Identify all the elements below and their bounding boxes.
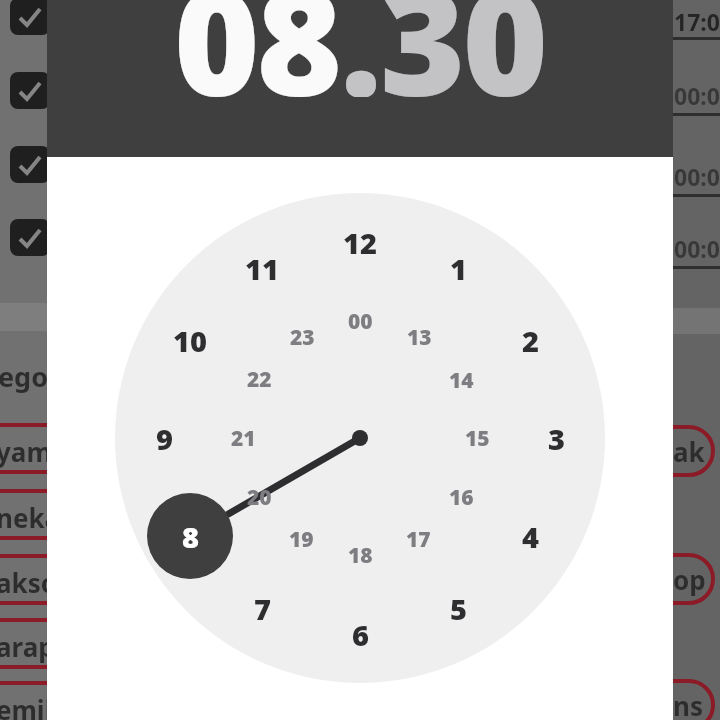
button[interactable]: 1 <box>428 238 488 298</box>
button[interactable]: 5 <box>428 578 488 638</box>
staticText: 2 <box>522 321 539 360</box>
staticText: 21 <box>231 424 256 453</box>
staticText: 00 <box>348 307 373 336</box>
button[interactable]: 14 <box>431 350 491 410</box>
button[interactable]: op <box>620 553 715 605</box>
button[interactable] <box>10 0 50 35</box>
staticText: 00:0 <box>674 161 720 192</box>
button[interactable]: 15 <box>447 408 507 468</box>
button[interactable]: 00 <box>330 291 390 351</box>
staticText: 15 <box>465 424 490 453</box>
staticText: 6 <box>352 615 369 654</box>
staticText: yam <box>0 434 52 469</box>
staticText: 22 <box>247 365 272 394</box>
staticText: 4 <box>522 517 539 556</box>
staticText: 3 <box>548 419 565 458</box>
button[interactable]: ak <box>620 425 715 477</box>
staticText: 17:0 <box>674 6 720 37</box>
staticText: arap <box>0 629 55 664</box>
staticText: 9 <box>156 419 173 458</box>
button[interactable]: 20 <box>229 467 289 527</box>
staticText: 10 <box>173 321 207 360</box>
staticText: neka <box>0 500 61 535</box>
button[interactable]: 8 <box>147 493 233 579</box>
staticText: 23 <box>290 323 315 352</box>
button[interactable]: 23 <box>272 307 332 367</box>
button[interactable] <box>10 72 50 109</box>
staticText: 5 <box>450 589 467 628</box>
staticText: 16 <box>449 483 474 512</box>
staticText: akso <box>0 565 57 600</box>
button[interactable]: 16 <box>431 467 491 527</box>
button[interactable]: 21 <box>213 408 273 468</box>
button[interactable]: 4 <box>500 506 560 566</box>
staticText: 13 <box>407 323 432 352</box>
staticText: 7 <box>254 589 271 628</box>
staticText: 17 <box>406 525 431 554</box>
button[interactable]: 19 <box>271 509 331 569</box>
button[interactable]: 08 <box>174 0 340 97</box>
staticText: ak <box>673 434 705 469</box>
staticText: 00:0 <box>674 80 720 111</box>
button[interactable]: 30 <box>380 0 546 97</box>
staticText: 00:0 <box>674 233 720 264</box>
staticText: . <box>340 0 380 97</box>
staticText: 20 <box>247 483 272 512</box>
staticText: 1 <box>450 249 467 288</box>
staticText: 18 <box>348 541 373 570</box>
staticText: op <box>673 562 706 597</box>
button[interactable]: 11 <box>232 238 292 298</box>
button[interactable]: 12 <box>330 212 390 272</box>
button[interactable] <box>10 219 50 256</box>
button[interactable]: 13 <box>389 307 449 367</box>
button[interactable]: 2 <box>500 310 560 370</box>
button[interactable]: 18 <box>330 525 390 585</box>
staticText: egori <box>0 358 69 395</box>
staticText: ns <box>673 688 703 720</box>
staticText: 19 <box>289 525 314 554</box>
button[interactable]: 10 <box>160 310 220 370</box>
button[interactable]: 6 <box>330 604 390 664</box>
button[interactable]: 3 <box>526 408 586 468</box>
button[interactable]: 22 <box>229 349 289 409</box>
button[interactable]: 17 <box>388 509 448 569</box>
staticText: 14 <box>449 366 474 395</box>
staticText: 11 <box>245 249 279 288</box>
button[interactable]: ns <box>620 679 715 720</box>
button[interactable]: 9 <box>134 408 194 468</box>
button[interactable] <box>10 146 50 183</box>
staticText: 8 <box>182 517 199 556</box>
staticText: emila <box>0 692 68 720</box>
staticText: 12 <box>343 223 377 262</box>
button[interactable]: 7 <box>232 578 292 638</box>
